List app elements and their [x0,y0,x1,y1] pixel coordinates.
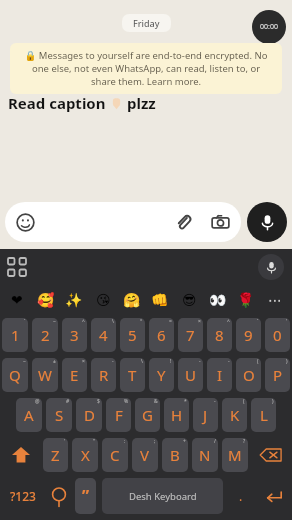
staticText: T [128,365,137,385]
button[interactable]: 1 [2,318,28,352]
button[interactable]: Toolbar [8,258,26,276]
button[interactable]: 😎 [179,290,199,310]
staticText: ° [140,318,143,325]
button[interactable]: L [251,398,276,432]
button[interactable]: C [102,438,128,472]
staticText: 🤗 [123,292,141,308]
staticText: W [38,365,52,385]
button[interactable]: 5 [120,318,145,352]
button[interactable]: 🥰 [36,290,56,310]
staticText: V [140,445,150,465]
button[interactable]: Camera [211,213,230,232]
button[interactable]: ?123 [2,477,44,515]
staticText: 👊 [151,292,169,308]
staticText: ! [170,358,172,365]
button[interactable]: 🤗 [122,290,142,310]
button[interactable]: 🔒 Messages to yourself are end-to-end en… [10,43,282,94]
button[interactable]: . [228,477,254,515]
staticText: × [82,358,85,365]
button[interactable]: 8 [207,318,232,352]
staticText: P [273,365,283,385]
button[interactable]: 🌹 [236,290,256,310]
staticText: ± [53,358,56,365]
button[interactable]: H [164,398,189,432]
button[interactable]: K [222,398,247,432]
staticText: O [243,365,255,385]
button[interactable]: A [16,398,42,432]
button[interactable]: Desh Keyboard [102,478,223,514]
staticText: 🥰 [37,292,55,308]
staticText: F [115,405,123,425]
button[interactable]: Quotes [75,478,96,514]
staticText: ^ [82,318,85,325]
button[interactable]: U [178,358,203,392]
staticText: / [214,438,216,445]
button[interactable]: E [62,358,87,392]
staticText: ` [257,318,259,325]
button[interactable]: P [265,358,290,392]
button[interactable]: Shift [2,437,39,473]
button[interactable]: V [132,438,158,472]
staticText: = [169,318,172,325]
button[interactable]: ✨ [64,290,84,310]
button[interactable]: 6 [149,318,174,352]
staticText: X [81,445,90,465]
button[interactable]: J [193,398,218,432]
staticText: M [228,445,242,465]
button[interactable]: S [46,398,72,432]
button[interactable]: Disappearing messages timer [252,10,286,44]
staticText: Friday [133,17,160,29]
button[interactable]: Backspace [252,437,290,473]
button[interactable]: D [76,398,102,432]
staticText: 😘 [96,292,111,308]
button[interactable]: W [32,358,58,392]
button[interactable]: G [135,398,160,432]
button[interactable]: 👀 [208,290,228,310]
staticText: R [99,365,109,385]
staticText: ( [257,358,259,365]
button[interactable]: Voice message [247,202,287,242]
button[interactable]: 4 [91,318,116,352]
staticText: K [230,405,240,425]
staticText: 8 [215,325,224,345]
button[interactable]: I [207,358,232,392]
staticText: plzz [127,93,156,113]
button[interactable]: X [72,438,98,472]
button[interactable]: Attach [174,213,193,232]
button[interactable]: B [162,438,188,472]
button[interactable]: 0 [265,318,290,352]
button[interactable]: Voice input [258,254,284,280]
staticText: . [239,488,243,504]
button[interactable]: Emoji keyboard [48,477,70,515]
button[interactable]: Enter [258,477,290,515]
button[interactable]: Emoji [5,202,241,242]
button[interactable]: O [236,358,261,392]
staticText: Q [9,365,21,385]
button[interactable]: Y [149,358,174,392]
button[interactable]: T [120,358,145,392]
staticText: $ [97,398,100,405]
staticText: 🌹 [237,292,255,308]
button[interactable]: F [106,398,131,432]
staticText: - [228,358,230,365]
button[interactable]: 2 [32,318,58,352]
button[interactable]: More emoji [265,290,285,310]
button[interactable]: ❤️ [7,290,27,310]
button[interactable]: Z [43,438,68,472]
button[interactable]: 👊 [150,290,170,310]
staticText: ⋯ [268,292,282,308]
button[interactable]: Q [2,358,28,392]
button[interactable]: N [192,438,218,472]
staticText: ^ [227,318,230,325]
button[interactable]: 3 [62,318,87,352]
button[interactable]: M [222,438,248,472]
button[interactable]: Friday [122,14,171,32]
staticText: ~ [53,318,56,325]
staticText: J [203,405,208,425]
button[interactable]: 😘 [93,290,113,310]
button[interactable]: R [91,358,116,392]
button[interactable]: 7 [178,318,203,352]
staticText: ? [243,438,246,445]
button[interactable]: 9 [236,318,261,352]
button[interactable]: Emoji [16,213,35,232]
